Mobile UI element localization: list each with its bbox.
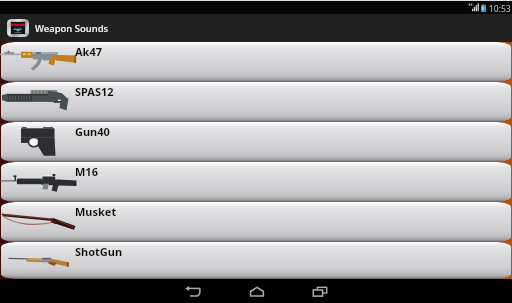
- staticText: Gun40: [75, 124, 110, 139]
- staticText: Ak47: [75, 44, 103, 59]
- button[interactable]: ShotGun: [0, 242, 512, 279]
- staticText: 10:53: [489, 3, 511, 15]
- button[interactable]: SPAS12: [0, 82, 512, 122]
- button[interactable]: Back: [178, 279, 208, 303]
- staticText: M16: [75, 164, 98, 179]
- staticText: Musket: [75, 204, 117, 219]
- button[interactable]: M16: [0, 162, 512, 202]
- staticText: SPAS12: [75, 84, 114, 99]
- button[interactable]: Home: [242, 279, 272, 303]
- button[interactable]: Ak47: [0, 42, 512, 82]
- button[interactable]: Musket: [0, 202, 512, 242]
- staticText: Weapon Sounds: [35, 22, 109, 35]
- button[interactable]: Gun40: [0, 122, 512, 162]
- button[interactable]: Recent apps: [305, 279, 335, 303]
- staticText: ShotGun: [75, 244, 123, 259]
